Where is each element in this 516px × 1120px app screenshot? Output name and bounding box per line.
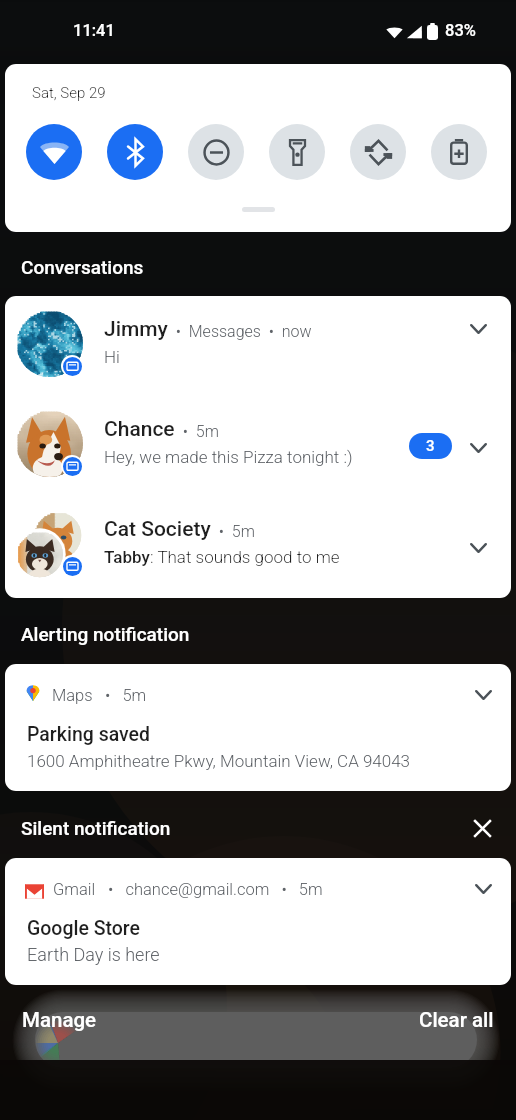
staticText: Conversations xyxy=(21,256,144,278)
staticText: • 5m xyxy=(93,686,147,705)
button[interactable]: Jimmy xyxy=(5,296,511,396)
button[interactable]: Manage xyxy=(10,1000,109,1040)
staticText: : That sounds good to me xyxy=(150,547,340,567)
staticText: • 5m xyxy=(211,522,255,541)
button[interactable]: Clear all xyxy=(407,1000,506,1040)
button[interactable]: Cat Society xyxy=(5,496,511,596)
staticText: Tabby xyxy=(104,547,150,567)
staticText: Alerting notification xyxy=(21,623,190,645)
button[interactable]: Maps xyxy=(5,664,511,791)
staticText: Clear all xyxy=(419,1008,494,1032)
staticText: Parking saved xyxy=(27,723,151,746)
button[interactable]: Gmail xyxy=(5,858,511,985)
button[interactable]: Expand xyxy=(460,311,496,347)
staticText: Hi xyxy=(104,347,120,367)
staticText: Google Store xyxy=(27,917,141,940)
staticText: • 5m xyxy=(175,422,219,441)
staticText: 3 xyxy=(426,437,435,455)
button[interactable]: Bluetooth xyxy=(107,124,163,180)
staticText: Gmail xyxy=(53,880,96,899)
button[interactable]: Do not disturb xyxy=(188,124,244,180)
staticText: 83% xyxy=(445,21,476,40)
button[interactable]: Battery saver xyxy=(431,124,487,180)
button[interactable]: Auto-rotate xyxy=(350,124,406,180)
button[interactable]: Flashlight xyxy=(269,124,325,180)
button[interactable]: Expand xyxy=(460,430,496,466)
staticText: Manage xyxy=(22,1008,97,1032)
staticText: Jimmy xyxy=(104,317,168,342)
button[interactable]: 3 xyxy=(409,433,452,459)
staticText: • Messages • now xyxy=(168,322,312,341)
button[interactable]: Chance xyxy=(5,396,511,496)
staticText: Earth Day is here xyxy=(27,944,160,965)
staticText: Sat, Sep 29 xyxy=(32,84,106,102)
staticText: Silent notification xyxy=(21,817,171,839)
staticText: Cat Society xyxy=(104,517,211,542)
button[interactable]: Expand xyxy=(460,530,496,566)
staticText: Chance xyxy=(104,417,175,442)
button[interactable]: Clear silent notifications xyxy=(464,810,500,846)
staticText: • chance@gmail.com • 5m xyxy=(96,880,323,899)
staticText: Maps xyxy=(52,686,93,705)
button[interactable]: Wi-Fi xyxy=(26,124,82,180)
staticText: 11:41 xyxy=(73,21,115,40)
staticText: 1600 Amphitheatre Pkwy, Mountain View, C… xyxy=(27,751,411,771)
staticText: Hey, we made this Pizza tonight :) xyxy=(104,447,353,467)
